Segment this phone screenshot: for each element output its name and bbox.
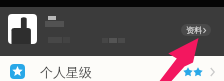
button[interactable]: 个人星级 (0, 56, 224, 81)
button[interactable]: Avatar (8, 14, 37, 44)
button[interactable]: 资料 (181, 24, 211, 36)
staticText: 个人星级 (40, 64, 92, 80)
staticText: 资料 (186, 25, 202, 35)
